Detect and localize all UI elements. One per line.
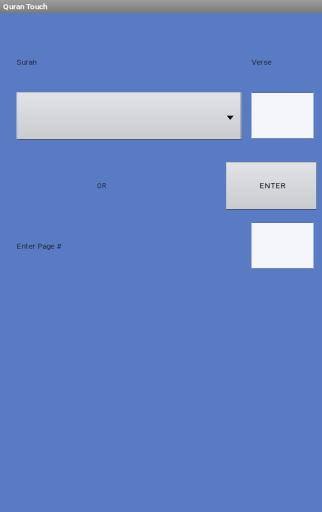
button[interactable]: Select Surah [16,92,241,140]
button[interactable]: ENTER [226,162,317,210]
button[interactable]: Page number [251,222,313,269]
staticText: OR [97,182,106,190]
staticText: Verse [251,57,271,67]
staticText: Enter Page # [16,241,61,251]
staticText: ENTER [259,181,285,190]
staticText: Quran Touch [3,2,47,11]
staticText: Surah [16,57,36,67]
button[interactable]: Verse number [251,92,313,139]
